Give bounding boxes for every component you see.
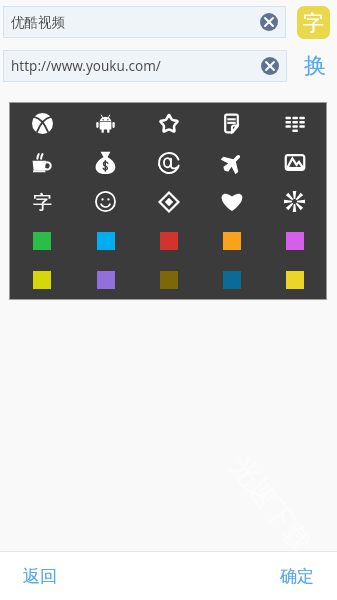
button[interactable]: Color bbox=[263, 260, 326, 299]
button[interactable]: Color bbox=[137, 221, 200, 260]
button[interactable]: Diamond bbox=[137, 182, 200, 221]
button[interactable]: 返回 bbox=[0, 552, 80, 600]
button[interactable]: Picture bbox=[263, 143, 326, 182]
button[interactable]: Coffee bbox=[10, 143, 74, 182]
button[interactable]: Clear bbox=[261, 57, 279, 75]
button[interactable]: Color bbox=[200, 221, 263, 260]
staticText: 返回 bbox=[23, 566, 57, 587]
button[interactable]: Heart bbox=[200, 182, 263, 221]
button[interactable]: http://www.youku.com/ bbox=[3, 50, 287, 82]
button[interactable]: Color bbox=[263, 221, 326, 260]
button[interactable]: Star bbox=[137, 103, 200, 143]
button[interactable]: 优酷视频 bbox=[3, 6, 286, 38]
staticText: 优酷视频 bbox=[11, 14, 65, 31]
button[interactable]: Xbox bbox=[10, 103, 74, 143]
button[interactable]: Color bbox=[137, 260, 200, 299]
button[interactable]: Keyboard bbox=[263, 103, 326, 143]
button[interactable]: Text bbox=[10, 182, 74, 221]
button[interactable]: Money bbox=[74, 143, 137, 182]
staticText: 字 bbox=[303, 10, 324, 36]
staticText: 换 bbox=[304, 52, 326, 80]
button[interactable]: Color bbox=[74, 221, 137, 260]
staticText: 确定 bbox=[280, 566, 314, 587]
staticText: 字 bbox=[33, 191, 52, 213]
button[interactable]: Smile bbox=[74, 182, 137, 221]
button[interactable]: Note bbox=[200, 103, 263, 143]
button[interactable]: Color bbox=[200, 260, 263, 299]
button[interactable]: Color bbox=[10, 260, 74, 299]
button[interactable]: Plane bbox=[200, 143, 263, 182]
staticText: http://www.youku.com/ bbox=[11, 57, 161, 75]
button[interactable]: Color bbox=[74, 260, 137, 299]
button[interactable]: Android bbox=[74, 103, 137, 143]
button[interactable]: Clear bbox=[260, 13, 278, 31]
button[interactable]: Sparkle bbox=[263, 182, 326, 221]
button[interactable]: 字 bbox=[297, 6, 330, 39]
button[interactable]: 确定 bbox=[257, 552, 337, 600]
button[interactable]: Color bbox=[10, 221, 74, 260]
button[interactable]: At bbox=[137, 143, 200, 182]
button[interactable]: 换 bbox=[294, 50, 336, 82]
